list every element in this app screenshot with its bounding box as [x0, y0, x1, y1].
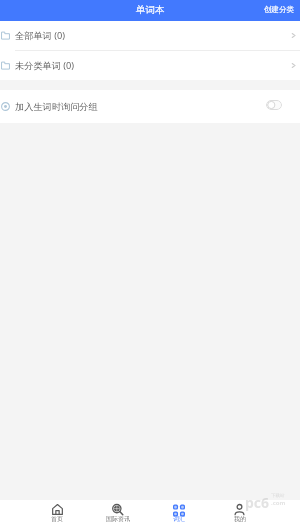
staticText: 我的	[234, 515, 246, 522]
staticText: 全部单词 (0)	[15, 29, 65, 42]
staticText: pc6	[245, 493, 270, 512]
staticText: 下载站	[271, 493, 285, 499]
button[interactable]: 国际资讯	[87, 504, 148, 522]
staticText: 首页	[51, 515, 63, 522]
button[interactable]: 加入生词时询问分组	[0, 90, 300, 123]
staticText: 加入生词时询问分组	[15, 101, 98, 113]
button[interactable]: 词汇	[148, 504, 209, 522]
button[interactable]: 我的	[209, 504, 270, 522]
button[interactable]: 创建分类	[258, 2, 300, 17]
staticText: 未分类单词 (0)	[15, 59, 75, 72]
staticText: .com	[271, 499, 286, 507]
button[interactable]: 未分类单词 (0)	[0, 51, 300, 80]
button[interactable]: 首页	[27, 504, 87, 522]
button[interactable]: 全部单词 (0)	[0, 21, 300, 50]
staticText: 单词本	[136, 4, 165, 16]
staticText: 国际资讯	[106, 515, 130, 522]
staticText: 词汇	[173, 515, 185, 522]
staticText: 创建分类	[264, 5, 294, 14]
